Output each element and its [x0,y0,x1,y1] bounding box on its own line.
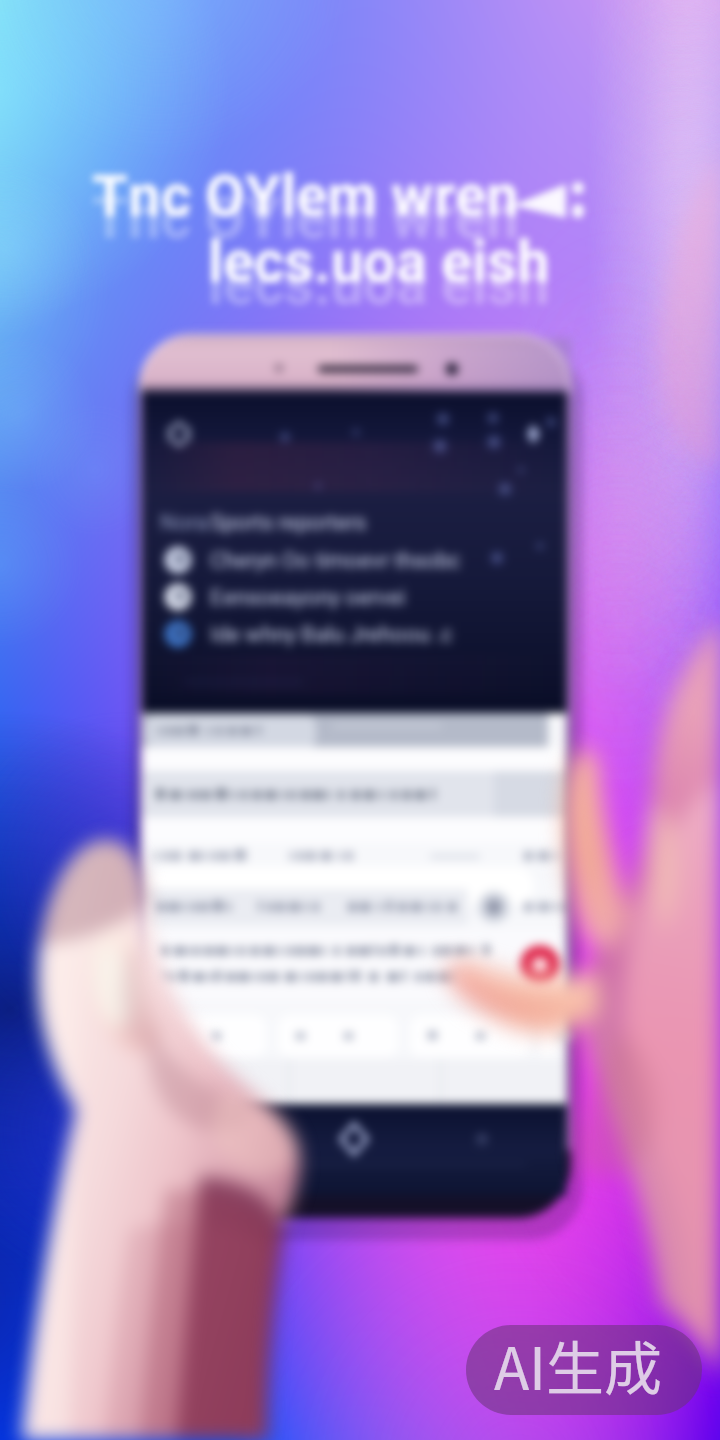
other: AI generated watermark [0,0,720,1440]
